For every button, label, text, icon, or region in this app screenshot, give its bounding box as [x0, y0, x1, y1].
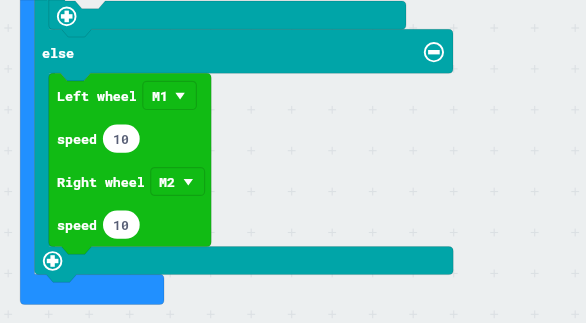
button[interactable]: Add block to else branch	[43, 251, 63, 271]
staticText: M2	[159, 173, 175, 191]
staticText: Left wheel	[57, 87, 137, 105]
staticText: speed	[57, 216, 97, 234]
staticText: 10	[113, 130, 129, 148]
button[interactable]	[35, 247, 454, 275]
button[interactable]	[143, 81, 197, 109]
button[interactable]: Remove else branch	[424, 42, 444, 62]
staticText: speed	[57, 130, 97, 148]
button[interactable]: Add block to if branch	[57, 7, 77, 27]
staticText: else	[42, 44, 74, 62]
button[interactable]	[151, 168, 205, 196]
button[interactable]	[103, 211, 140, 239]
button[interactable]	[35, 29, 453, 73]
button[interactable]	[49, 73, 212, 246]
staticText: M1	[152, 87, 168, 105]
button[interactable]	[103, 125, 140, 153]
staticText: 10	[113, 216, 129, 234]
staticText: Right wheel	[57, 173, 145, 191]
